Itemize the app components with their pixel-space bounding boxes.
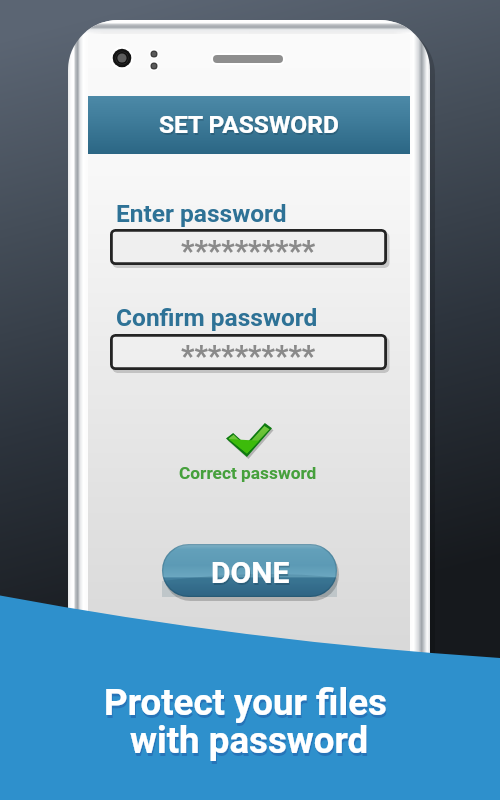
staticText: Correct password	[179, 463, 317, 483]
button[interactable]: **********	[110, 334, 387, 370]
staticText: DONE	[211, 555, 290, 590]
staticText: with password	[131, 722, 370, 765]
staticText: **********	[181, 234, 316, 269]
staticText: DONE	[212, 557, 291, 592]
button[interactable]: SET PASSWORD	[88, 96, 410, 154]
staticText: Protect your files	[105, 684, 388, 727]
other: Password valid	[226, 423, 272, 457]
staticText: with password	[130, 719, 369, 762]
button[interactable]: **********	[110, 229, 387, 265]
staticText: Confirm password	[116, 303, 318, 332]
staticText: Protect your files	[104, 681, 387, 724]
staticText: **********	[181, 339, 316, 374]
button[interactable]: DONE	[162, 544, 337, 597]
staticText: Enter password	[116, 199, 287, 228]
staticText: SET PASSWORD	[159, 110, 339, 139]
staticText: SET PASSWORD	[160, 112, 340, 141]
